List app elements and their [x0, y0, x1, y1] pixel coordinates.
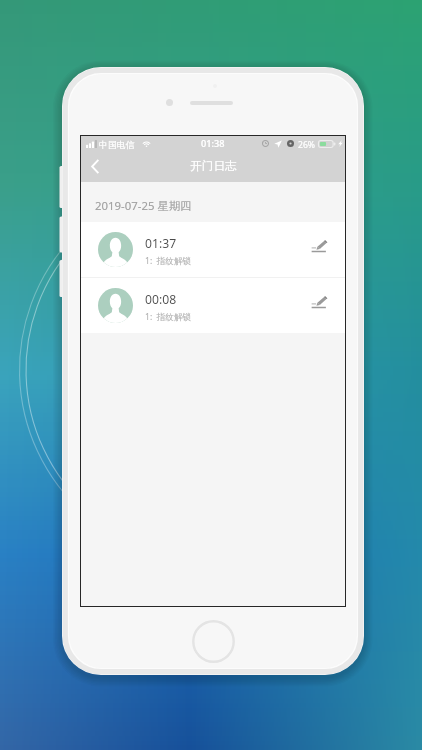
staticText: 01:37 [145, 235, 177, 252]
staticText: 开门日志 [190, 159, 237, 174]
staticText: 1: 指纹解锁 [145, 255, 192, 267]
staticText: 中国电信 [99, 139, 135, 150]
staticText: 00:08 [145, 291, 177, 308]
staticText: 26% [298, 139, 315, 151]
button[interactable]: Edit [307, 238, 331, 262]
staticText: 01:38 [201, 137, 225, 150]
staticText: 1: 指纹解锁 [145, 311, 192, 323]
button[interactable]: Edit [307, 294, 331, 318]
button[interactable]: 00:08 [81, 278, 345, 333]
button[interactable]: Back [81, 151, 109, 182]
staticText: 2019-07-25 星期四 [95, 198, 192, 214]
button[interactable]: 01:37 [81, 222, 345, 277]
